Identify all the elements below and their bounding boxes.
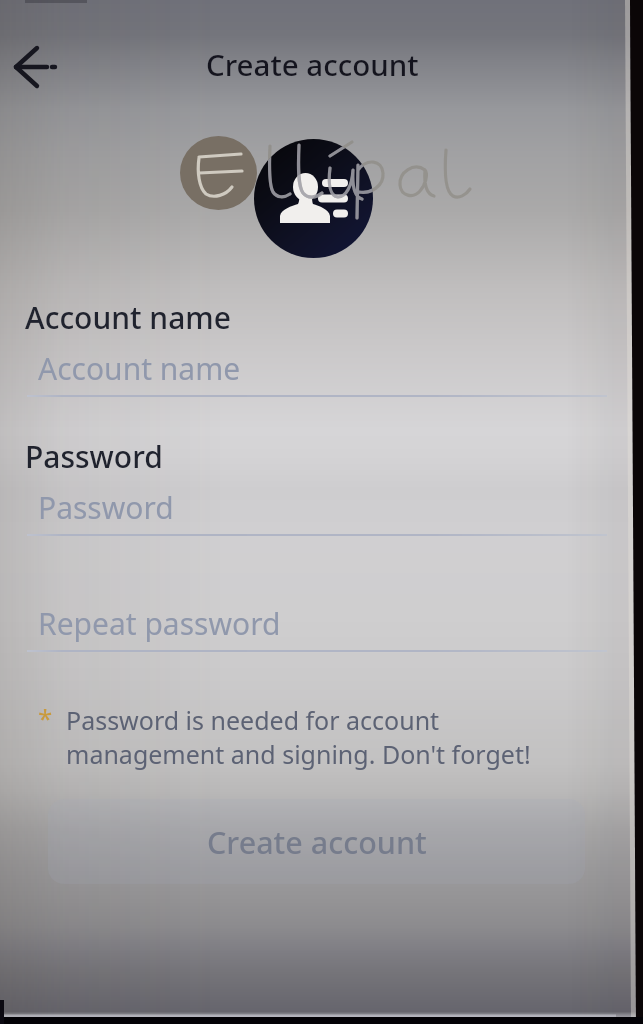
button[interactable]: Create account bbox=[48, 799, 585, 884]
button[interactable]: Repeat password bbox=[27, 600, 607, 652]
button[interactable]: Password bbox=[27, 484, 607, 536]
staticText: Password bbox=[38, 487, 174, 528]
button[interactable]: Choose avatar bbox=[254, 139, 373, 258]
staticText: Repeat password bbox=[38, 603, 281, 644]
staticText: * bbox=[38, 700, 53, 735]
staticText: Create account bbox=[206, 44, 419, 84]
staticText: Account name bbox=[25, 297, 231, 338]
staticText: Password bbox=[25, 436, 163, 477]
staticText: Create account bbox=[207, 821, 427, 863]
staticText: Account name bbox=[38, 348, 241, 389]
button[interactable]: Account name bbox=[27, 345, 607, 397]
staticText: Password is needed for account managemen… bbox=[66, 703, 531, 772]
button[interactable]: Back bbox=[0, 38, 62, 100]
